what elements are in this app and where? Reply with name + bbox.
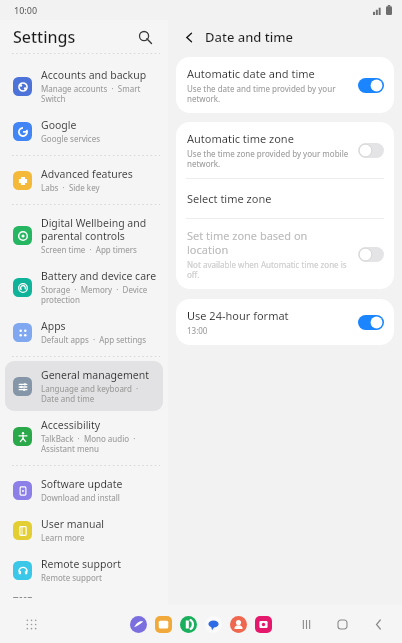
button[interactable]: Phone [180, 616, 197, 633]
staticText: Advanced features [41, 167, 133, 181]
button[interactable]: Set time zone based on location [176, 219, 394, 289]
button[interactable]: Battery and device care [5, 262, 163, 312]
button[interactable]: Select time zone [176, 179, 394, 218]
button[interactable]: Recents [296, 614, 316, 634]
button[interactable]: Software update [5, 470, 163, 510]
button[interactable]: Back [368, 614, 388, 634]
staticText: Use the date and time provided by your n… [187, 83, 350, 104]
staticText: 13:00 [187, 325, 208, 336]
button[interactable]: About tablet [5, 590, 163, 605]
staticText: Remote support [41, 557, 121, 571]
button[interactable]: Google [5, 111, 163, 151]
button[interactable]: Contacts [230, 616, 247, 633]
button[interactable]: Remote support [5, 550, 163, 590]
staticText: Download and install [41, 492, 120, 503]
staticText: Google [41, 118, 77, 132]
staticText: Screen time · App timers [41, 244, 137, 255]
staticText: Software update [41, 477, 123, 491]
staticText: Labs · Side key [41, 182, 100, 193]
staticText: Apps [41, 319, 66, 333]
button[interactable]: Digital Wellbeing and parental controls [5, 209, 163, 262]
staticText: 10:00 [14, 4, 38, 16]
staticText: Settings [13, 26, 76, 48]
staticText: Learn more [41, 532, 85, 543]
staticText: Set time zone based on location [187, 228, 350, 257]
staticText: Digital Wellbeing and parental controls [41, 216, 157, 243]
staticText: Automatic date and time [187, 66, 315, 81]
button[interactable]: Samsung Internet [130, 616, 147, 633]
staticText: Accounts and backup [41, 68, 147, 82]
button[interactable]: Use 24-hour format [176, 299, 394, 345]
staticText: Select time zone [187, 191, 272, 206]
staticText: Not available when Automatic time zone i… [187, 259, 350, 280]
button[interactable]: Accounts and backup [5, 61, 163, 111]
staticText: User manual [41, 517, 104, 531]
staticText: Use 24-hour format [187, 308, 289, 323]
button[interactable]: Gallery [255, 616, 272, 633]
staticText: Google services [41, 133, 101, 144]
staticText: Date and time [205, 28, 294, 46]
staticText: Manage accounts · Smart Switch [41, 83, 157, 104]
staticText: Use the time zone provided by your mobil… [187, 148, 350, 169]
staticText: Default apps · App settings [41, 334, 147, 345]
button[interactable]: Messages [205, 616, 222, 633]
button[interactable]: User manual [5, 510, 163, 550]
button[interactable]: Advanced features [5, 160, 163, 200]
button[interactable]: Accessibility [5, 411, 163, 461]
button[interactable]: General management [5, 361, 163, 411]
staticText: Automatic time zone [187, 131, 294, 146]
button[interactable]: My Files [155, 616, 172, 633]
staticText: Storage · Memory · Device protection [41, 284, 157, 305]
button[interactable]: Home [332, 614, 352, 634]
button[interactable]: Apps [5, 312, 163, 352]
button[interactable]: Search [132, 24, 158, 50]
staticText: Remote support [41, 572, 102, 583]
staticText: Language and keyboard · Date and time [41, 383, 157, 404]
staticText: Battery and device care [41, 269, 157, 283]
staticText: Accessibility [41, 418, 101, 432]
button[interactable]: Apps list [20, 613, 42, 635]
button[interactable]: Back [178, 26, 200, 48]
button[interactable]: Automatic time zone [176, 122, 394, 178]
button[interactable]: Automatic date and time [176, 57, 394, 113]
staticText: General management [41, 368, 149, 382]
staticText: TalkBack · Mono audio · Assistant menu [41, 433, 157, 454]
